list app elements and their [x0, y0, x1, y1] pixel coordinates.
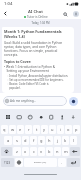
staticText: f	[33, 138, 35, 143]
staticText: Today, 1:04 PM	[0, 21, 81, 25]
staticText: • Week 1: Introduction to Python &	[4, 65, 55, 69]
button[interactable]: Ask me anything...	[3, 96, 67, 106]
staticText: x	[24, 149, 27, 154]
staticText: p	[75, 127, 78, 132]
button[interactable]: o	[65, 125, 72, 134]
staticText: Topics to Cover:	[4, 59, 32, 64]
staticText: u	[51, 127, 54, 132]
staticText: ?123	[4, 161, 11, 165]
button[interactable]: a	[4, 136, 12, 145]
button[interactable]: GIF	[15, 113, 23, 121]
button[interactable]: r	[25, 125, 32, 134]
button[interactable]: v	[38, 147, 45, 156]
button[interactable]: g	[38, 136, 45, 145]
staticText: Ask me anything...	[10, 99, 36, 103]
staticText: c	[33, 149, 35, 154]
staticText: concepts.	[4, 53, 19, 57]
button[interactable]: Enter	[67, 158, 80, 167]
button[interactable]: d	[22, 136, 29, 145]
button[interactable]: u	[49, 125, 56, 134]
staticText: ◦ Basics: Code Editor (VS Code is	[7, 82, 49, 86]
button[interactable]: w	[9, 125, 16, 134]
staticText: t	[36, 127, 38, 132]
button[interactable]: n	[54, 147, 61, 156]
button[interactable]: Voice input	[58, 113, 66, 121]
button[interactable]: q	[1, 125, 8, 134]
button[interactable]: Search	[60, 9, 70, 19]
button[interactable]: Shift	[1, 147, 12, 156]
staticText: ◦ Set up a recommended IDE for beginners…	[7, 78, 64, 82]
button[interactable]: s	[13, 136, 21, 145]
button[interactable]: t	[33, 125, 40, 134]
button[interactable]: Keyboard layouts	[4, 113, 12, 121]
button[interactable]: x	[22, 147, 29, 156]
button[interactable]: e	[17, 125, 24, 134]
button[interactable]: More options	[69, 113, 77, 121]
button[interactable]: Send	[69, 97, 78, 106]
button[interactable]: b	[46, 147, 53, 156]
staticText: Goal: Build a solid foundation in Python	[4, 41, 63, 45]
button[interactable]: Profile	[70, 8, 81, 19]
staticText: syntax, data types, and core Python	[4, 45, 57, 49]
staticText: l	[73, 138, 75, 143]
staticText: r	[28, 127, 30, 132]
staticText: Setting up your Environment	[4, 69, 49, 73]
button[interactable]: English (US)	[24, 158, 57, 167]
staticText: h	[48, 138, 51, 143]
staticText: (Weeks 1-4)	[4, 34, 25, 39]
staticText: s	[16, 138, 18, 143]
staticText: e	[19, 127, 22, 132]
button[interactable]: f	[30, 136, 37, 145]
staticText: o	[67, 127, 70, 132]
button[interactable]: Settings	[37, 113, 45, 121]
staticText: b	[48, 149, 51, 154]
staticText: w	[11, 127, 15, 132]
staticText: y	[43, 127, 46, 132]
staticText: Tutor is Online	[27, 15, 48, 19]
staticText: functions. Focus on simple, practical	[4, 49, 58, 53]
staticText: AI Chat	[28, 9, 43, 15]
button[interactable]: k	[62, 136, 69, 145]
staticText: a	[7, 138, 10, 143]
button[interactable]: Clipboard	[47, 113, 55, 121]
button[interactable]: Backspace	[70, 147, 80, 156]
staticText: g	[40, 138, 43, 143]
button[interactable]: j	[54, 136, 61, 145]
staticText: popular).	[7, 86, 21, 90]
staticText: 1:04	[4, 1, 13, 7]
button[interactable]: h	[46, 136, 53, 145]
staticText: d	[24, 138, 27, 143]
button[interactable]: p	[73, 125, 80, 134]
staticText: ◦ Install Python, Anaconda/Jupyter distr…	[7, 74, 69, 78]
button[interactable]: l	[70, 136, 77, 145]
button[interactable]: Emoji	[26, 113, 34, 121]
button[interactable]: z	[13, 147, 21, 156]
staticText: k	[64, 138, 67, 143]
button[interactable]: i	[57, 125, 64, 134]
button[interactable]: Emoji	[15, 158, 23, 167]
staticText: n	[56, 149, 59, 154]
button[interactable]: m	[62, 147, 69, 156]
button[interactable]: ?123	[1, 158, 14, 167]
staticText: j	[57, 138, 59, 143]
staticText: z	[16, 149, 18, 154]
button[interactable]: Back	[0, 8, 11, 19]
button[interactable]: c	[30, 147, 37, 156]
staticText: Month 1: Python Fundamentals	[4, 29, 62, 34]
staticText: i	[60, 127, 62, 132]
staticText: English (US)	[34, 161, 47, 164]
staticText: m	[64, 149, 68, 154]
staticText: q	[3, 127, 6, 132]
staticText: .	[61, 160, 63, 165]
staticText: v	[40, 149, 43, 154]
button[interactable]: .	[58, 158, 66, 167]
button[interactable]: y	[41, 125, 48, 134]
